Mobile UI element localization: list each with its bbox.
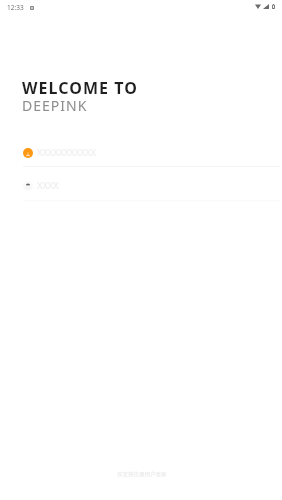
other: Account [23, 148, 33, 158]
button[interactable]: Account [0, 140, 282, 165]
staticText: 12:33 [7, 3, 24, 12]
button[interactable]: 仅支持注册用户登录 [117, 471, 167, 478]
staticText: XXXXXXXXXXX [37, 146, 97, 159]
staticText: XXXX [37, 179, 59, 192]
button[interactable]: Password [0, 173, 282, 198]
staticText: DEEPINK [22, 96, 88, 115]
staticText: WELCOME TO [22, 77, 138, 99]
other: Password [23, 181, 33, 191]
